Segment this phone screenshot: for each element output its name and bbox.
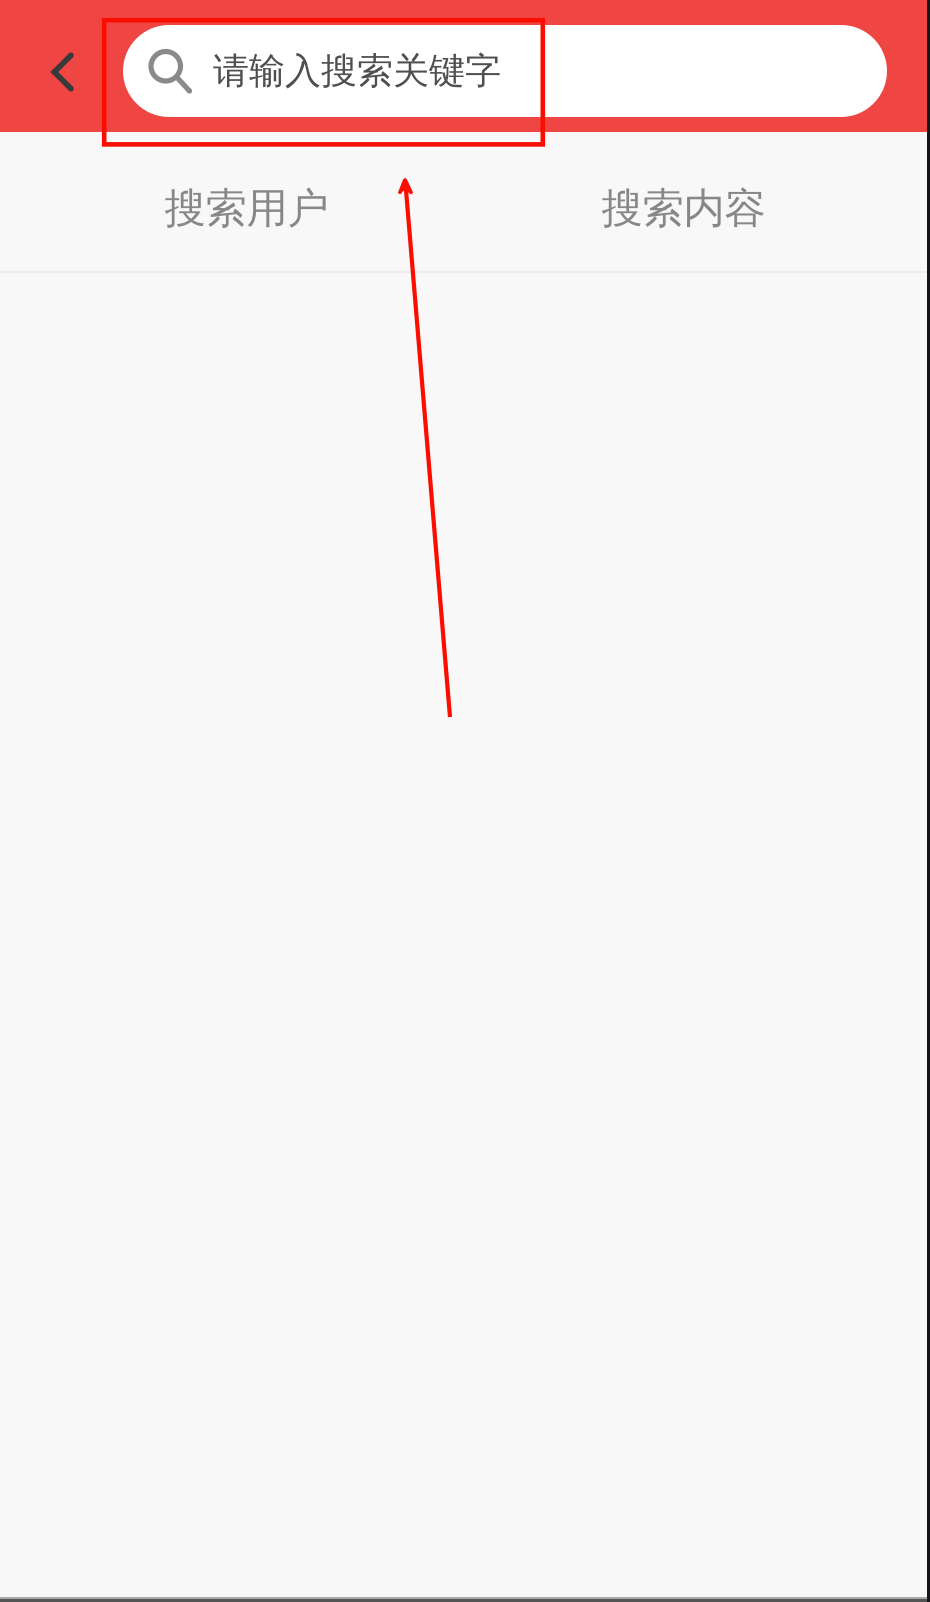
button[interactable]: 搜索内容 bbox=[465, 132, 902, 271]
staticText: 搜索用户 bbox=[164, 183, 328, 234]
button[interactable]: 请输入搜索关键字 bbox=[123, 25, 887, 117]
staticText: 搜索内容 bbox=[601, 183, 765, 234]
button[interactable]: Back bbox=[0, 0, 110, 132]
button[interactable]: 搜索用户 bbox=[28, 132, 465, 271]
staticText: 请输入搜索关键字 bbox=[213, 49, 501, 93]
